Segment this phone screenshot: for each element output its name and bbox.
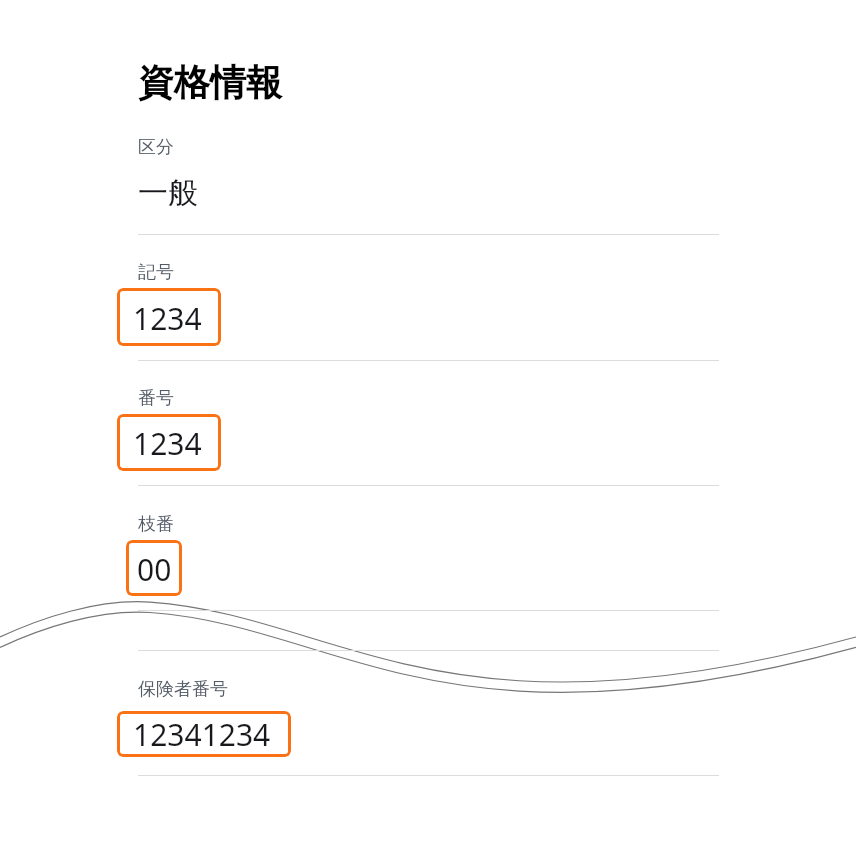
button[interactable]: 1234 — [117, 414, 221, 471]
staticText: 資格情報 — [138, 60, 282, 105]
staticText: 1234 — [133, 298, 202, 339]
staticText: 一般 — [138, 174, 198, 212]
staticText: 保険者番号 — [138, 678, 228, 701]
button[interactable]: 一般 — [138, 174, 198, 212]
staticText: 1234 — [133, 423, 202, 464]
staticText: 番号 — [138, 387, 174, 410]
button[interactable]: 1234 — [117, 288, 221, 346]
staticText: 12341234 — [133, 714, 271, 755]
button[interactable]: 00 — [126, 540, 182, 596]
staticText: 区分 — [138, 136, 174, 159]
staticText: 記号 — [138, 261, 174, 284]
staticText: 枝番 — [138, 513, 174, 536]
staticText: 00 — [137, 549, 172, 590]
button[interactable]: 12341234 — [117, 711, 291, 757]
